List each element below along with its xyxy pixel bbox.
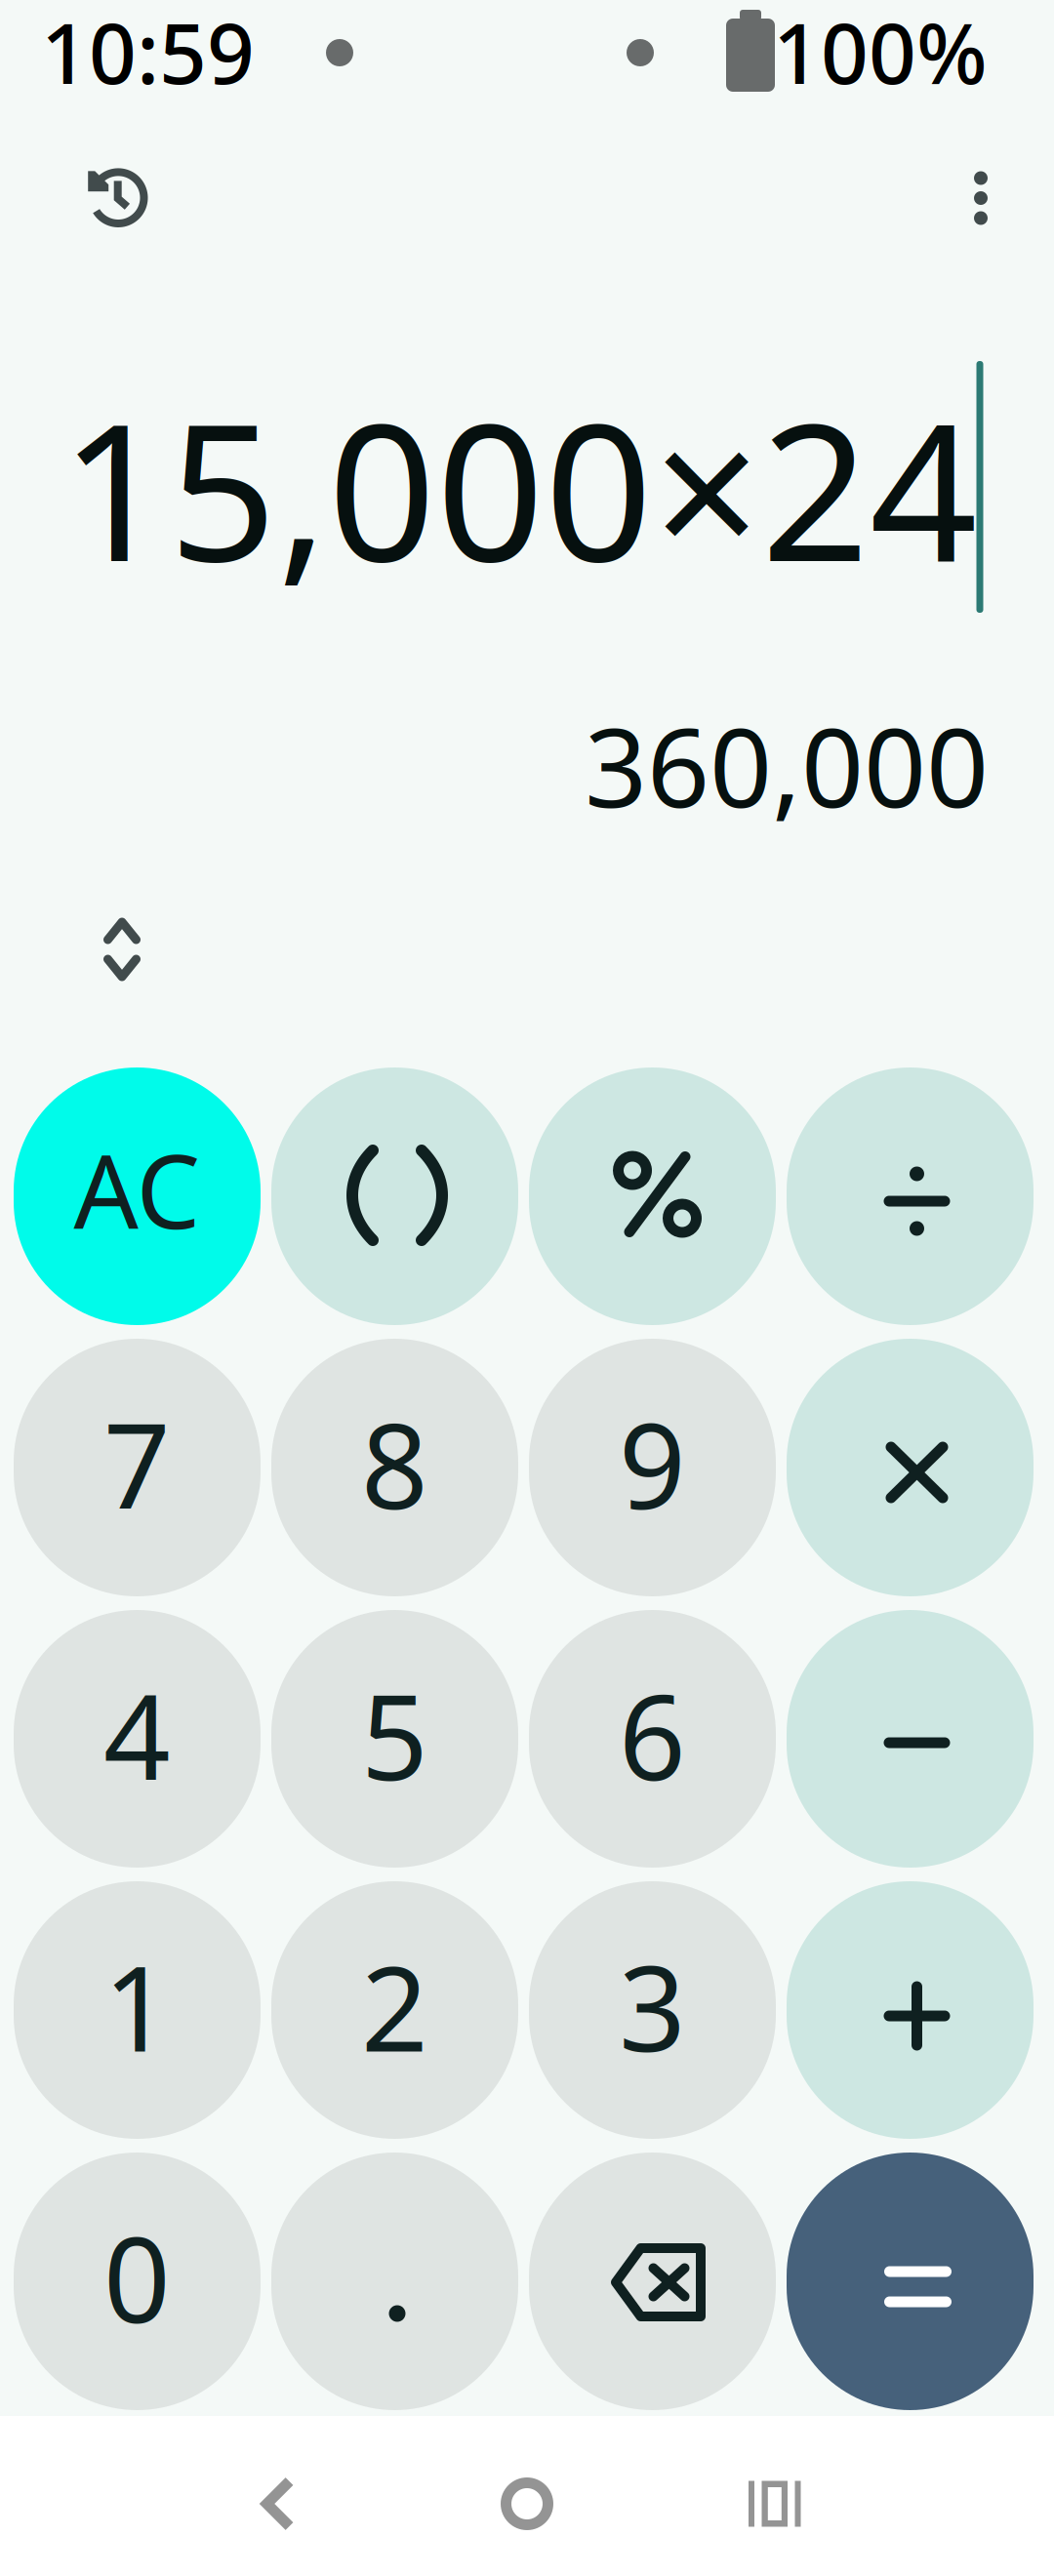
button[interactable]: 5: [271, 1610, 518, 1868]
button[interactable]: 2: [271, 1881, 518, 2139]
button[interactable]: 3: [529, 1881, 776, 2139]
button[interactable]: More options: [908, 125, 1054, 271]
button[interactable]: Percent: [529, 1067, 776, 1325]
button[interactable]: 9: [529, 1339, 776, 1596]
button[interactable]: 8: [271, 1339, 518, 1596]
staticText: 1: [103, 1928, 171, 2084]
staticText: 9: [619, 1386, 686, 1541]
button[interactable]: 7: [14, 1339, 261, 1596]
button[interactable]: Home: [449, 2431, 605, 2576]
button[interactable]: Decimal point: [271, 2153, 518, 2410]
staticText: 0: [103, 2200, 171, 2355]
button[interactable]: Plus: [787, 1881, 1034, 2139]
button[interactable]: Minus: [787, 1610, 1034, 1868]
staticText: AC: [74, 1122, 201, 1257]
button[interactable]: 4: [14, 1610, 261, 1868]
staticText: 8: [361, 1386, 428, 1541]
button[interactable]: 0: [14, 2153, 261, 2410]
button[interactable]: Parentheses: [271, 1067, 518, 1325]
button[interactable]: History: [45, 125, 191, 271]
staticText: 5: [361, 1657, 428, 1813]
button[interactable]: Back: [200, 2431, 356, 2576]
button[interactable]: All clear: [14, 1067, 261, 1325]
staticText: 360,000: [585, 692, 989, 837]
button[interactable]: 1: [14, 1881, 261, 2139]
button[interactable]: Equals: [787, 2153, 1034, 2410]
button[interactable]: Recent apps: [697, 2431, 853, 2576]
staticText: 10:59: [41, 0, 255, 107]
button[interactable]: Backspace: [529, 2153, 776, 2410]
staticText: 15,000×24: [61, 363, 978, 613]
staticText: 4: [103, 1657, 171, 1813]
staticText: 6: [619, 1657, 686, 1813]
staticText: 2: [361, 1928, 428, 2084]
button[interactable]: 6: [529, 1610, 776, 1868]
staticText: 3: [619, 1928, 686, 2084]
staticText: 7: [103, 1386, 171, 1541]
button[interactable]: Divide: [787, 1067, 1034, 1325]
button[interactable]: Multiply: [787, 1339, 1034, 1596]
staticText: 100%: [773, 0, 988, 107]
button[interactable]: Expand: [49, 876, 195, 1023]
